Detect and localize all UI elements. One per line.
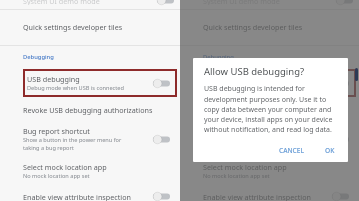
staticText: taking a bug report [23, 144, 74, 152]
staticText: System UI demo mode [23, 0, 100, 5]
button[interactable]: Toggle [153, 192, 170, 201]
staticText: Quick settings developer tiles [23, 22, 123, 32]
button[interactable]: Select mock location app [203, 162, 355, 180]
staticText: Quick settings developer tiles [203, 22, 303, 32]
button[interactable]: Quick settings developer tiles [23, 22, 176, 32]
button[interactable]: Enable view attribute inspection [23, 192, 176, 201]
button[interactable]: Toggle [157, 0, 174, 5]
staticText: Enable view attribute inspection [203, 192, 311, 201]
staticText: USB debugging is intended for developmen… [204, 84, 339, 134]
button[interactable]: USB debugging [207, 74, 355, 92]
staticText: CANCEL [279, 146, 305, 155]
staticText: No mock location app set [23, 172, 90, 180]
button[interactable]: Select mock location app [23, 162, 176, 180]
button[interactable]: System UI demo mode [203, 0, 359, 9]
button[interactable]: Quick settings developer tiles [203, 22, 355, 32]
button[interactable]: Toggle [336, 0, 353, 5]
staticText: Allow USB debugging? [204, 65, 305, 78]
staticText: No mock location app set [203, 172, 270, 180]
staticText: System UI demo mode [203, 0, 280, 5]
staticText: Debugging [203, 53, 234, 61]
button[interactable]: Toggle [332, 192, 349, 201]
staticText: Bug report shortcut [23, 126, 90, 136]
staticText: Revoke USB debugging authorizations [203, 105, 333, 115]
staticText: Debug mode when USB is connected [207, 84, 304, 92]
button[interactable]: Toggle [332, 135, 349, 144]
button[interactable]: Revoke USB debugging authorizations [203, 105, 355, 115]
staticText: Bug report shortcut [203, 126, 270, 136]
staticText: OK [325, 146, 335, 155]
button[interactable]: Revoke USB debugging authorizations [23, 105, 176, 115]
staticText: Show a button in the power menu for [23, 136, 122, 144]
staticText: Revoke USB debugging authorizations [23, 105, 153, 115]
staticText: Select mock location app [23, 162, 107, 172]
button[interactable]: USB debugging [27, 74, 176, 92]
button[interactable]: OK [321, 144, 339, 157]
staticText: Debugging [23, 53, 54, 61]
staticText: Select mock location app [203, 162, 287, 172]
button[interactable]: System UI demo mode [23, 0, 180, 9]
staticText: USB debugging [207, 74, 260, 84]
button[interactable]: Enable view attribute inspection [203, 192, 355, 201]
button[interactable]: Toggle [153, 135, 170, 144]
button[interactable]: Toggle [332, 79, 349, 88]
staticText: Enable view attribute inspection [23, 192, 131, 201]
staticText: Debug mode when USB is connected [27, 84, 124, 92]
button[interactable]: CANCEL [275, 144, 309, 157]
staticText: USB debugging [27, 74, 80, 84]
button[interactable]: Toggle [153, 79, 170, 88]
button[interactable]: Bug report shortcut [23, 126, 176, 152]
button[interactable]: Bug report shortcut [203, 126, 355, 152]
